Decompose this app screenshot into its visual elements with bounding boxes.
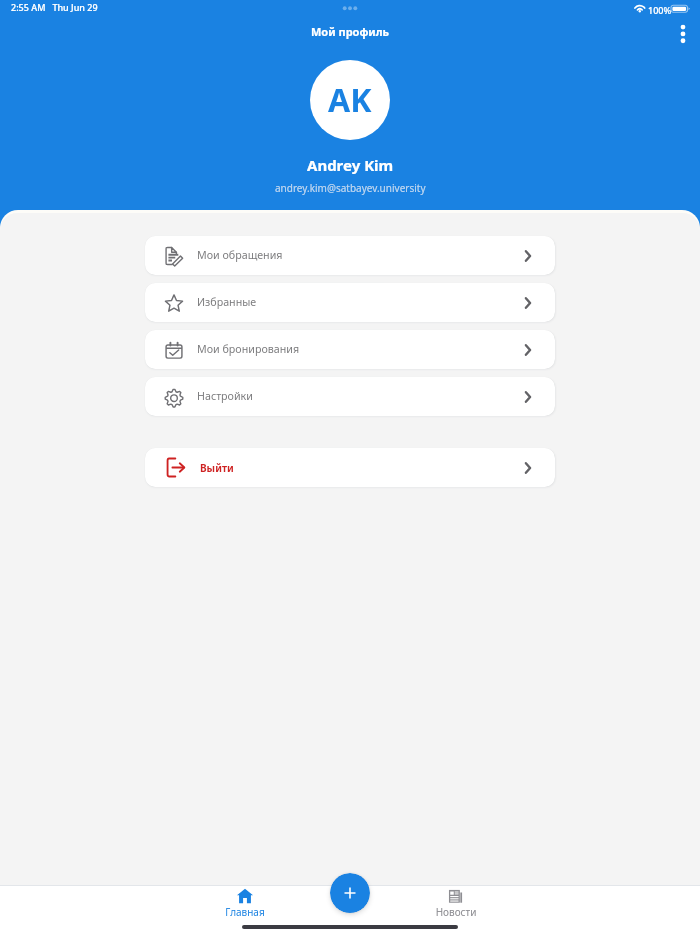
button[interactable]: Мои обращения [145, 236, 555, 275]
button[interactable]: Add [330, 873, 370, 913]
staticText: Мои бронирования [197, 342, 300, 357]
staticText: Настройки [197, 389, 253, 404]
staticText: AK [328, 78, 372, 122]
button[interactable]: Избранные [145, 283, 555, 322]
button[interactable]: Мои бронирования [145, 330, 555, 369]
button[interactable]: More options [664, 15, 694, 45]
staticText: Избранные [197, 295, 257, 310]
staticText: 100% [648, 4, 672, 16]
staticText: Мои обращения [197, 248, 283, 263]
button[interactable]: Главная [210, 888, 280, 919]
staticText: 2:55 AM Thu Jun 29 [11, 1, 98, 13]
staticText: Выйти [200, 461, 234, 475]
button[interactable]: Настройки [145, 377, 555, 416]
staticText: andrey.kim@satbayev.university [275, 181, 426, 195]
staticText: Главная [210, 905, 280, 919]
staticText: Andrey Kim [307, 155, 394, 175]
staticText: Мой профиль [311, 24, 390, 39]
button[interactable]: Новости [421, 888, 491, 919]
staticText: Новости [421, 905, 491, 919]
button[interactable]: Выйти [145, 448, 555, 487]
